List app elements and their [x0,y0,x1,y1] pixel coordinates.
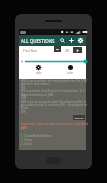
button[interactable]: Search [58,35,67,46]
staticText: platform dependent. [21,82,51,86]
staticText: JRE stands for Java Runtime Environment.… [21,89,88,97]
staticText: 2. Heap [21,138,32,142]
button[interactable]: Apply [73,47,82,53]
staticText: JVM? [21,126,28,130]
staticText: UPDATE [74,116,84,119]
staticText: 1. Class(Method) Area [21,134,52,138]
staticText: ALL QUESTIONS [21,38,55,44]
staticText: JDK [21,110,26,114]
staticText: 20 [65,48,69,53]
staticText: First Run [23,48,38,53]
button[interactable]: Decrease [54,46,61,52]
staticText: JVM's are available for many platforms l… [21,79,88,87]
staticText: 3. Stack [21,142,32,146]
button[interactable]: UPDATE [73,115,85,120]
staticText: JRE [21,86,26,90]
button[interactable]: Add question [67,35,76,46]
staticText: JVM is an acronym for Java Development K… [21,100,88,108]
button[interactable]: Settings [76,35,85,46]
staticText: color [67,71,74,75]
staticText: physically exists. It contains JRE + dev… [21,103,87,107]
button[interactable]: Colour [66,65,75,75]
staticText: Answer [21,131,32,135]
staticText: How many types of memory areas are alloc… [21,122,88,130]
staticText: style [36,71,42,75]
button[interactable]: Style [34,65,43,75]
staticText: tools. [21,106,29,110]
staticText: implementation of JVM. [21,93,55,97]
staticText: JVM [21,96,27,100]
